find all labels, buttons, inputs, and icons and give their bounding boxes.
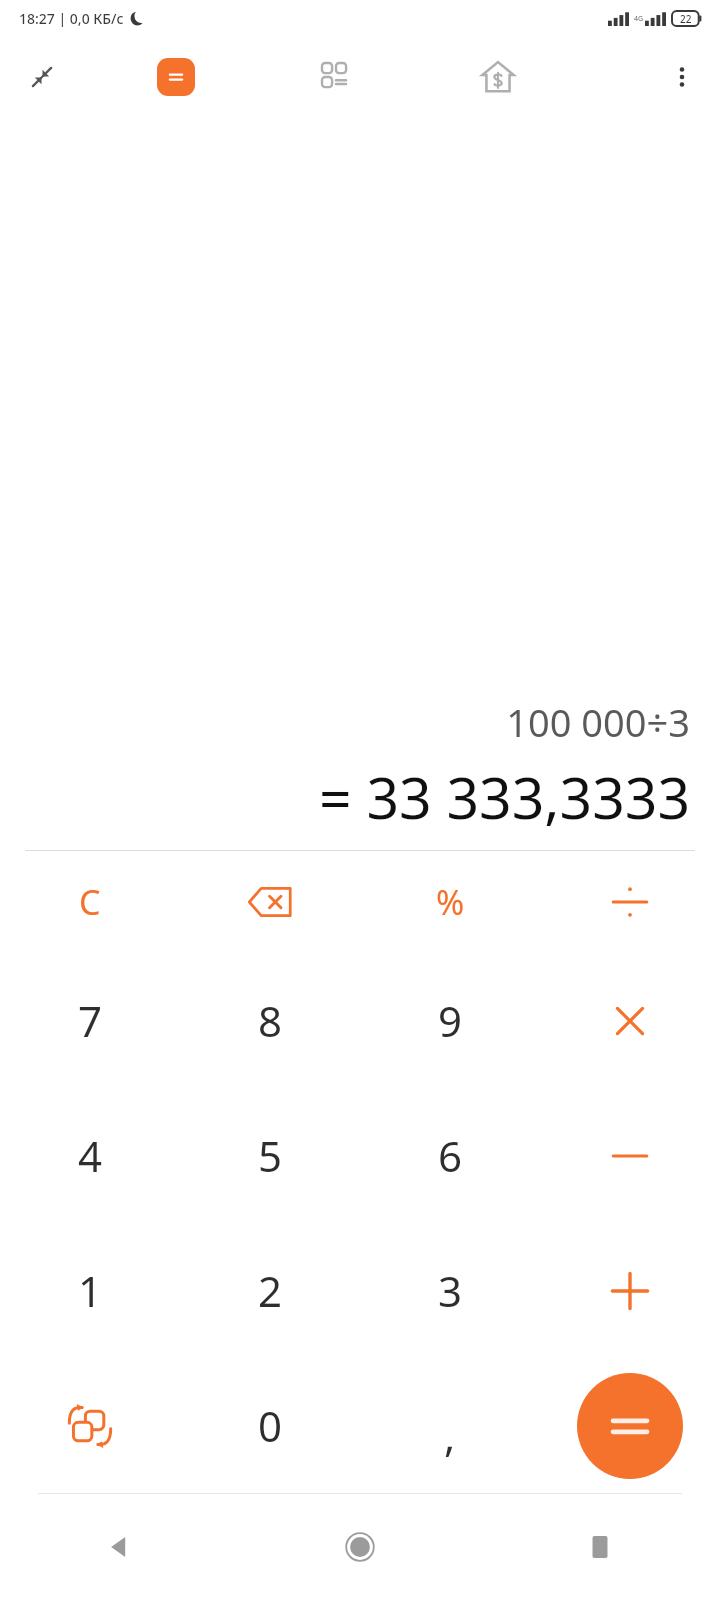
button[interactable]: Minus	[540, 1088, 720, 1223]
button[interactable]: 3	[360, 1223, 540, 1358]
button[interactable]: Loan calculator	[470, 49, 526, 105]
button[interactable]: Convert	[0, 1358, 180, 1493]
button[interactable]: 4	[0, 1088, 180, 1223]
staticText: 4	[78, 1127, 103, 1184]
button[interactable]: Calculator	[152, 53, 200, 101]
button[interactable]: 8	[180, 953, 360, 1088]
button[interactable]: Back	[0, 1494, 240, 1600]
button[interactable]: 6	[360, 1088, 540, 1223]
staticText: 0	[258, 1397, 283, 1454]
staticText: 1	[78, 1262, 103, 1319]
staticText: 9	[438, 992, 463, 1049]
button[interactable]: Recents	[480, 1494, 720, 1600]
staticText: 3	[438, 1262, 463, 1319]
button[interactable]: Backspace	[180, 851, 360, 953]
staticText: 2	[258, 1262, 283, 1319]
staticText: 22	[680, 12, 692, 26]
button[interactable]: Collapse	[18, 53, 66, 101]
button[interactable]: 2	[180, 1223, 360, 1358]
button[interactable]: Multiply	[540, 953, 720, 1088]
button[interactable]: Plus	[540, 1223, 720, 1358]
button[interactable]: %	[360, 851, 540, 953]
staticText: 8	[258, 992, 283, 1049]
button[interactable]: Home	[240, 1494, 480, 1600]
button[interactable]: Converters	[310, 51, 362, 103]
staticText: C	[79, 879, 101, 925]
button[interactable]: ,	[360, 1358, 540, 1493]
button[interactable]: 5	[180, 1088, 360, 1223]
staticText: = 33 333,3333	[319, 758, 690, 836]
staticText: 6	[438, 1127, 463, 1184]
button[interactable]: 1	[0, 1223, 180, 1358]
staticText: 7	[78, 992, 103, 1049]
button[interactable]: Equals	[540, 1358, 720, 1493]
staticText: 18:27 | 0,0 КБ/с	[19, 9, 124, 28]
staticText: ,	[444, 1407, 456, 1464]
button[interactable]: Divide	[540, 851, 720, 953]
staticText: 5	[258, 1127, 283, 1184]
button[interactable]: 9	[360, 953, 540, 1088]
staticText: 100 000÷3	[506, 696, 690, 748]
button[interactable]: C	[0, 851, 180, 953]
staticText: %	[436, 879, 465, 925]
button[interactable]: 7	[0, 953, 180, 1088]
button[interactable]: More options	[658, 53, 706, 101]
button[interactable]: 0	[180, 1358, 360, 1493]
staticText: 4G	[634, 14, 644, 24]
